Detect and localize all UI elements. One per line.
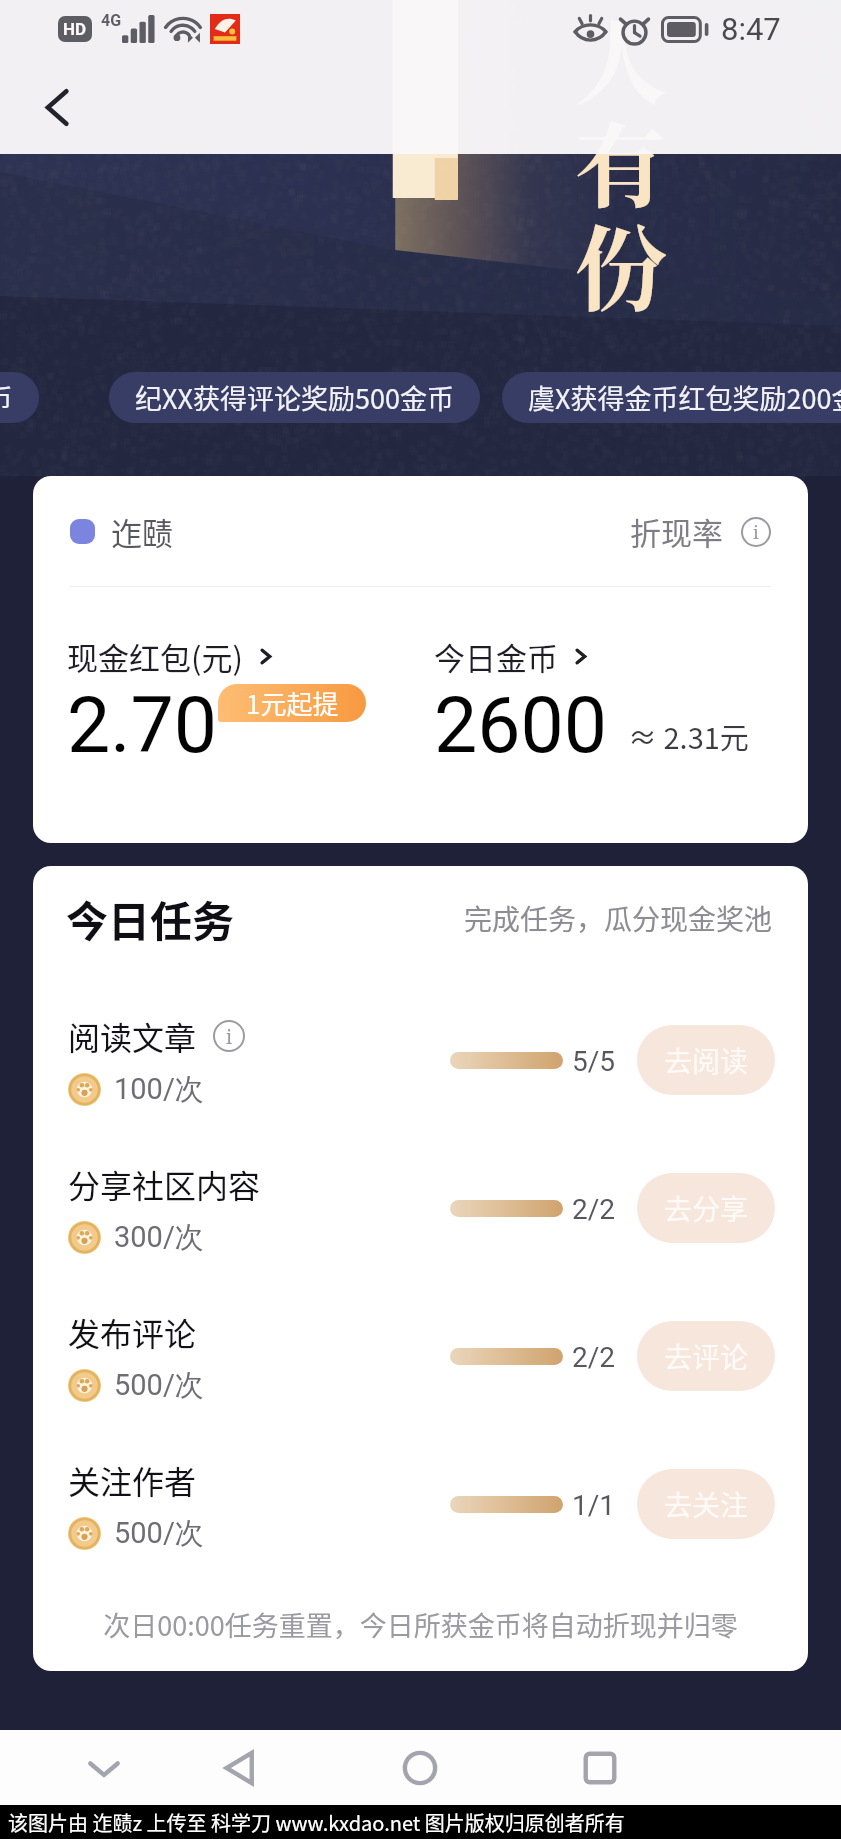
staticText: 迮赜 (111, 509, 173, 554)
staticText: 300/次 (114, 1219, 204, 1256)
staticText: 有 (575, 94, 668, 226)
staticText: 2/2 (572, 1193, 616, 1226)
staticText: 纪XX获得评论奖励500金币 (135, 378, 454, 417)
staticText: 今日任务 (66, 888, 235, 949)
button[interactable]: 纪XX获得评论奖励500金币 (109, 372, 480, 423)
button[interactable]: Back (26, 76, 88, 138)
staticText: 5/5 (572, 1045, 616, 1078)
button[interactable]: Back (206, 1730, 274, 1805)
staticText: i (226, 1023, 233, 1049)
staticText: 完成任务，瓜分现金奖池 (464, 898, 773, 939)
button[interactable]: Hide keyboard (70, 1730, 138, 1805)
staticText: 虞X获得金币红包奖励200金币 (528, 378, 841, 417)
staticText: ≈ 2.31元 (628, 715, 749, 757)
staticText: 去阅读 (664, 1040, 749, 1081)
button[interactable]: 去阅读 (637, 1025, 775, 1095)
staticText: 2600 (434, 681, 608, 771)
staticText: 1元起提 (246, 684, 339, 722)
staticText: X获得阅读奖励100金币 (0, 378, 13, 417)
staticText: 分享社区内容 (68, 1161, 261, 1207)
staticText: 发布评论 (68, 1309, 197, 1355)
button[interactable]: Recent apps (566, 1730, 634, 1805)
staticText: 现金红包(元) (67, 634, 243, 679)
staticText: 去评论 (664, 1336, 749, 1377)
staticText: HD (63, 19, 87, 39)
staticText: 今日金币 (434, 634, 558, 679)
staticText: 人 (575, 0, 668, 123)
staticText: 4G (101, 11, 122, 30)
button[interactable]: 1元起提 (218, 684, 366, 722)
staticText: 2/2 (572, 1341, 616, 1374)
button[interactable]: 现金红包(元) (67, 634, 276, 679)
staticText: 去关注 (664, 1484, 749, 1525)
button[interactable]: 虞X获得金币红包奖励200金币 (502, 372, 841, 423)
staticText: 500/次 (114, 1367, 204, 1404)
staticText: 折现率 (630, 509, 723, 554)
staticText: 阅读文章 (68, 1013, 197, 1059)
button[interactable]: Info (213, 1020, 245, 1052)
staticText: 100/次 (114, 1071, 204, 1108)
button[interactable]: 折现率 (630, 509, 771, 554)
staticText: 次日00:00任务重置，今日所获金币将自动折现并归零 (103, 1605, 738, 1644)
staticText: 该图片由 迮赜z 上传至 科学刀 www.kxdao.net 图片版权归原创者所… (8, 1808, 625, 1837)
staticText: 1/1 (572, 1489, 616, 1522)
button[interactable]: X获得阅读奖励100金币 (0, 372, 39, 423)
staticText: 2.70 (67, 681, 218, 771)
button[interactable]: 去评论 (637, 1321, 775, 1391)
staticText: 去分享 (664, 1188, 749, 1229)
staticText: 关注作者 (68, 1457, 197, 1503)
staticText: 8:47 (721, 11, 781, 47)
staticText: i (753, 520, 759, 545)
button[interactable]: 去关注 (637, 1469, 775, 1539)
staticText: 份 (575, 197, 668, 329)
button[interactable]: Home (386, 1730, 454, 1805)
button[interactable]: 今日金币 (434, 634, 591, 679)
staticText: 500/次 (114, 1515, 204, 1552)
button[interactable]: 去分享 (637, 1173, 775, 1243)
